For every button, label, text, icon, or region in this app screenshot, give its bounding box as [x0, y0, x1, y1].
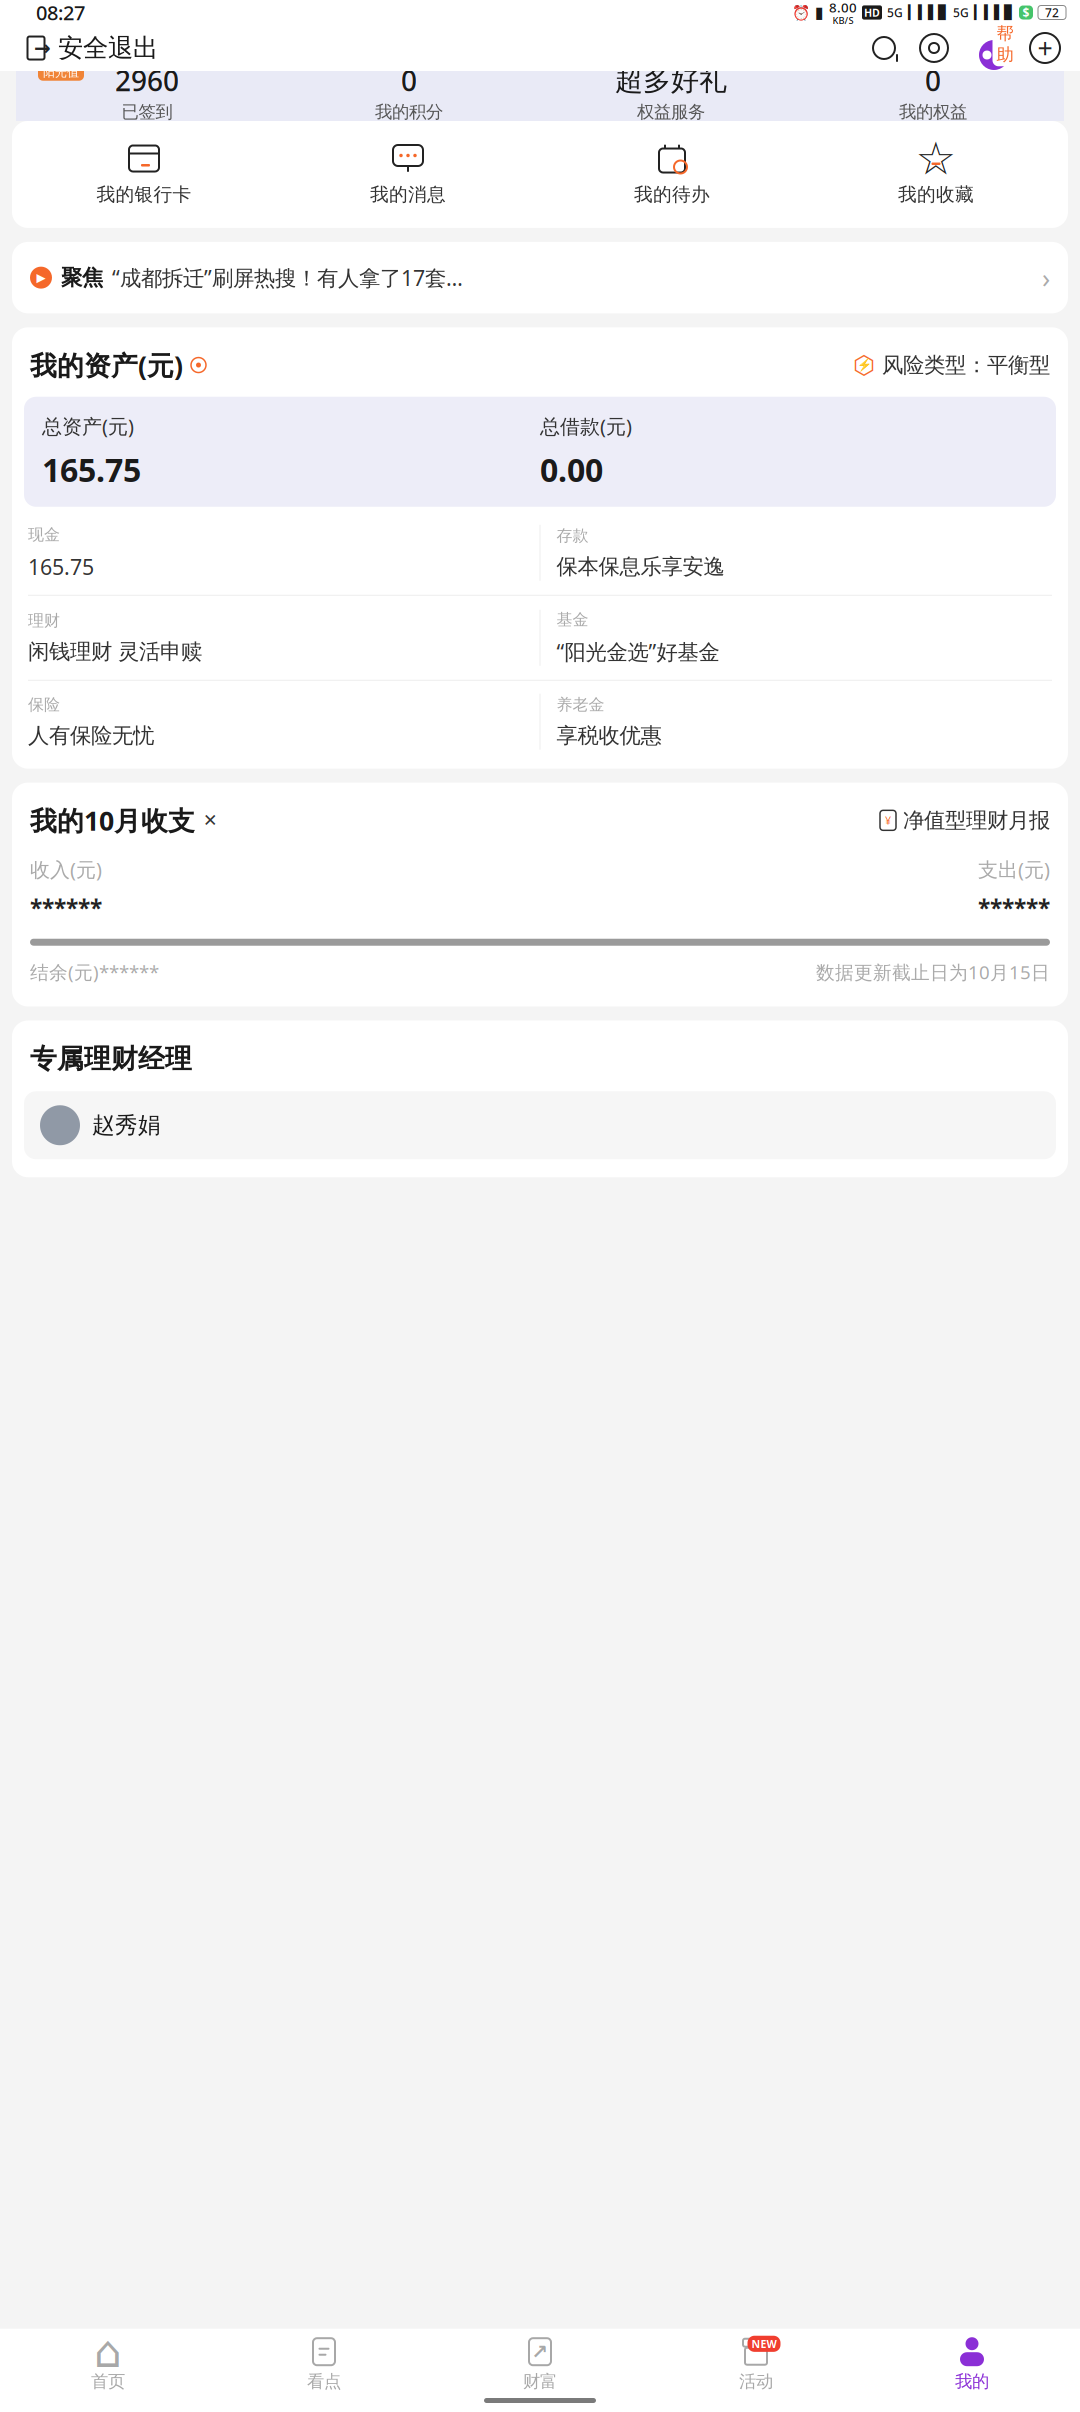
staticText: 我的10月收支 [30, 803, 195, 838]
staticText: HD [864, 5, 880, 20]
staticText: 权益服务 [637, 101, 705, 123]
button[interactable]: 搜索 [868, 32, 900, 64]
button[interactable]: ↗ [432, 2337, 648, 2392]
staticText: 现金 [28, 525, 60, 544]
staticText: 5G [953, 4, 969, 20]
button[interactable]: NEW [648, 2337, 864, 2392]
staticText: 活动 [739, 2371, 773, 2392]
staticText: 结余(元)****** [30, 960, 159, 984]
staticText: ▎▍▌▊ [908, 5, 948, 20]
staticText: → [34, 37, 51, 59]
button[interactable]: 基金 [540, 596, 1068, 680]
staticText: ⬡ [853, 351, 875, 379]
staticText: 165.75 [28, 552, 94, 581]
staticText: NEW [751, 2337, 776, 2351]
button[interactable]: ⬡ [853, 351, 1050, 379]
button[interactable]: 理财 [12, 597, 539, 679]
staticText: 人有保险无忧 [28, 722, 154, 749]
staticText: 72 [1045, 4, 1059, 20]
staticText: ✕ [203, 810, 218, 830]
staticText: ****** [978, 893, 1050, 923]
staticText: 首页 [91, 2371, 125, 2392]
button[interactable]: 现金 [12, 511, 539, 595]
staticText: 阳光值 [43, 65, 79, 80]
button[interactable]: 扫一扫 [918, 32, 950, 64]
staticText: ↗ [531, 2340, 548, 2363]
staticText: 闲钱理财 灵活申赎 [28, 638, 202, 665]
staticText: 聚焦 [61, 264, 103, 291]
button[interactable]: 赵秀娟 [24, 1091, 1056, 1159]
staticText: ⌂ [94, 2327, 122, 2377]
staticText: $ [1022, 4, 1029, 20]
staticText: 风险类型：平衡型 [882, 352, 1050, 378]
staticText: 保本保息乐享安逸 [556, 553, 724, 580]
staticText: ▎▍▌▊ [974, 5, 1014, 20]
staticText: ¥ [885, 813, 891, 827]
staticText: 0 [401, 62, 417, 99]
staticText: ▮ [815, 3, 824, 22]
button[interactable]: ☆ [804, 139, 1068, 210]
staticText: 已签到 [121, 101, 172, 123]
staticText: 我的积分 [375, 101, 443, 123]
staticText: 赵秀娟 [92, 1111, 161, 1139]
staticText: ☆ [915, 133, 956, 184]
staticText: 存款 [556, 526, 588, 546]
staticText: › [1042, 260, 1050, 295]
staticText: 保险 [28, 695, 60, 714]
staticText: KB/S [832, 14, 853, 27]
staticText: 我的 [955, 2371, 989, 2392]
button[interactable]: 更多 [1028, 31, 1062, 65]
button[interactable]: 看点 [216, 2337, 432, 2392]
staticText: 享税收优惠 [556, 722, 661, 749]
staticText: 收入(元) [30, 856, 102, 883]
staticText: + [1037, 30, 1052, 66]
button[interactable]: 存款 [540, 512, 1068, 594]
staticText: 我的收藏 [898, 183, 974, 206]
button[interactable]: ⌂ [0, 2337, 216, 2392]
button[interactable]: 帮助 [966, 25, 1022, 71]
staticText: ▶ [36, 271, 45, 284]
staticText: 养老金 [556, 695, 604, 714]
button[interactable]: 0 [278, 65, 540, 123]
staticText: 0.00 [540, 448, 603, 491]
button[interactable]: 超多好礼 [540, 65, 802, 123]
staticText: 净值型理财月报 [903, 807, 1050, 833]
button[interactable]: 我的 [864, 2337, 1080, 2392]
staticText: “阳光金选”好基金 [556, 637, 719, 666]
button[interactable]: ¥ [880, 807, 1050, 833]
button[interactable]: ▶ [12, 242, 1068, 313]
staticText: 5G [887, 4, 903, 20]
button[interactable]: 我的消息 [276, 139, 540, 210]
staticText: ⏰ [792, 4, 810, 21]
staticText: 2960 [115, 62, 179, 99]
staticText: ****** [30, 893, 102, 923]
staticText: 我的权益 [899, 101, 967, 123]
staticText: ⚡ [856, 358, 871, 372]
button[interactable]: 我的10月收支 [30, 803, 218, 838]
staticText: 安全退出 [58, 32, 158, 63]
staticText: 支出(元) [978, 856, 1050, 883]
staticText: 财富 [523, 2371, 557, 2392]
staticText: 我的消息 [370, 183, 446, 206]
staticText: 0 [925, 62, 941, 99]
staticText: 我的银行卡 [96, 183, 191, 206]
button[interactable]: 我的银行卡 [12, 139, 276, 210]
staticText: “成都拆迁”刷屏热搜！有人拿了17套… [112, 263, 463, 292]
staticText: 专属理财经理 [30, 1042, 192, 1075]
staticText: 基金 [556, 610, 588, 629]
button[interactable]: 我的资产(元) [30, 347, 206, 383]
button[interactable]: 养老金 [540, 681, 1068, 763]
staticText: 理财 [28, 611, 60, 631]
staticText: 8.00 [829, 0, 857, 16]
button[interactable]: → [22, 32, 158, 63]
staticText: 总资产(元) [42, 413, 134, 439]
staticText: 165.75 [42, 448, 141, 491]
button[interactable]: 2960 [16, 65, 278, 123]
staticText: 帮助 [996, 23, 1013, 65]
staticText: 看点 [307, 2371, 341, 2392]
button[interactable]: 0 [802, 65, 1064, 123]
button[interactable]: 保险 [12, 681, 539, 763]
staticText: 总借款(元) [540, 413, 632, 439]
button[interactable]: 我的待办 [540, 139, 804, 210]
staticText: 超多好礼 [615, 63, 727, 98]
